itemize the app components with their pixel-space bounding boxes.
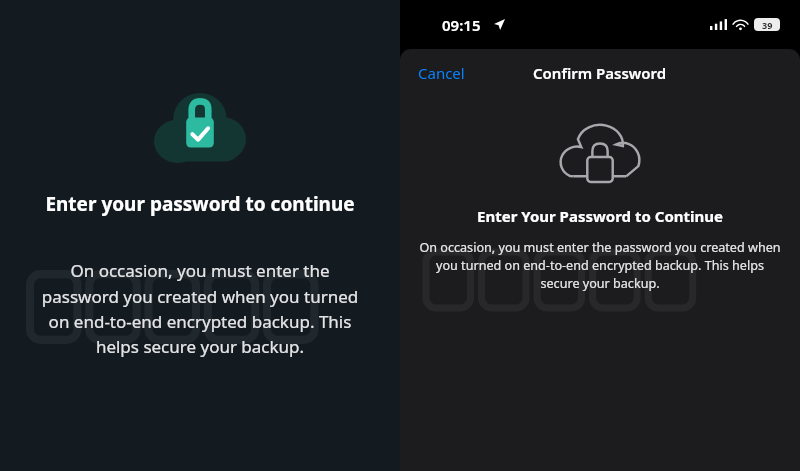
staticText: Enter your password to continue <box>14 191 386 217</box>
staticText: Enter Your Password to Continue <box>412 206 788 226</box>
staticText: 09:15 <box>442 15 481 35</box>
other: Encrypted backup <box>154 93 246 163</box>
staticText: On occasion, you must enter the password… <box>36 259 364 358</box>
staticText: On occasion, you must enter the password… <box>417 239 783 292</box>
other: Encrypted backup <box>559 123 641 185</box>
button[interactable]: Cancel <box>409 56 474 90</box>
staticText: Cancel <box>418 63 465 83</box>
staticText: 39 <box>762 19 773 31</box>
staticText: Confirm Password <box>533 63 667 83</box>
